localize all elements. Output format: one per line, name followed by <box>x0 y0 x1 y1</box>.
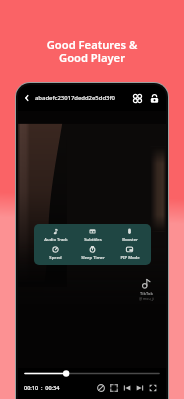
staticText: Booster <box>122 237 138 243</box>
button[interactable]: Aspect ratio <box>107 381 120 394</box>
button[interactable]: Sleep Timer <box>74 245 111 262</box>
button[interactable]: PIP Mode <box>111 245 148 262</box>
button[interactable]: Speed <box>37 245 74 262</box>
staticText: Audio Track <box>44 237 68 243</box>
button[interactable]: Fullscreen <box>146 381 159 394</box>
staticText: Speed <box>49 255 62 261</box>
staticText: PIP Mode <box>120 255 140 261</box>
staticText: 00:10 : 00:34 <box>24 384 60 391</box>
button[interactable]: Playlist <box>131 92 144 105</box>
staticText: abadefc23017dedd2e5dd3f0 <box>35 94 115 102</box>
staticText: @ mou_ji <box>139 296 154 301</box>
staticText: TikTok <box>140 291 153 296</box>
button[interactable]: Booster <box>111 227 148 244</box>
button[interactable]: Back <box>20 91 34 105</box>
button[interactable]: Audio Track <box>37 227 74 244</box>
staticText: Good Features & Good Player <box>0 37 184 65</box>
button[interactable]: Subtitles <box>74 227 111 244</box>
staticText: Subtitles <box>84 237 102 243</box>
button[interactable]: Lock screen <box>148 92 161 105</box>
button[interactable]: Previous <box>120 381 133 394</box>
button[interactable]: Next <box>133 381 146 394</box>
button[interactable]: Repeat off <box>94 381 107 394</box>
staticText: Sleep Timer <box>81 255 105 261</box>
